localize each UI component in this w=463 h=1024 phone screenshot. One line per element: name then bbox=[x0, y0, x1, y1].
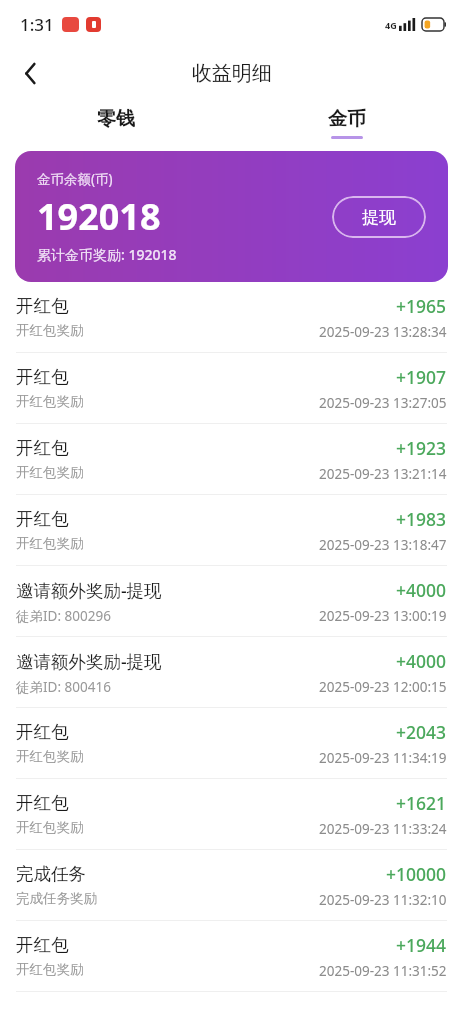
staticText: 2025-09-23 13:00:19 bbox=[319, 607, 447, 625]
staticText: +1983 bbox=[396, 507, 447, 531]
staticText: 192018 bbox=[37, 192, 161, 241]
button[interactable]: 零钱 bbox=[0, 98, 231, 148]
button[interactable]: 开红包 bbox=[0, 353, 463, 424]
staticText: 2025-09-23 13:21:14 bbox=[319, 465, 447, 483]
staticText: 完成任务奖励 bbox=[16, 890, 97, 907]
staticText: 2025-09-23 13:18:47 bbox=[319, 536, 447, 554]
staticText: 开红包 bbox=[16, 508, 69, 530]
staticText: 开红包奖励 bbox=[16, 322, 84, 339]
staticText: 累计金币奖励: 192018 bbox=[37, 245, 177, 264]
staticText: 1:31 bbox=[20, 13, 54, 36]
button[interactable]: 完成任务 bbox=[0, 850, 463, 921]
staticText: +1923 bbox=[396, 436, 447, 460]
staticText: 开红包奖励 bbox=[16, 535, 84, 552]
staticText: 开红包 bbox=[16, 721, 69, 743]
staticText: 开红包奖励 bbox=[16, 393, 84, 410]
button[interactable]: 开红包 bbox=[0, 708, 463, 779]
staticText: +10000 bbox=[386, 862, 447, 886]
staticText: 开红包 bbox=[16, 792, 69, 814]
staticText: 开红包奖励 bbox=[16, 961, 84, 978]
button[interactable]: 金币余额(币) bbox=[15, 151, 448, 282]
staticText: 开红包 bbox=[16, 934, 69, 956]
staticText: 金币余额(币) bbox=[37, 170, 113, 188]
staticText: 开红包 bbox=[16, 437, 69, 459]
button[interactable]: 开红包 bbox=[0, 424, 463, 495]
staticText: 徒弟ID: 800296 bbox=[16, 607, 111, 625]
staticText: 2025-09-23 13:27:05 bbox=[319, 394, 447, 412]
staticText: 开红包 bbox=[16, 295, 69, 317]
staticText: +4000 bbox=[396, 578, 447, 602]
staticText: +2043 bbox=[396, 720, 447, 744]
staticText: 提现 bbox=[362, 207, 396, 228]
staticText: +1944 bbox=[396, 933, 447, 957]
staticText: 2025-09-23 13:28:34 bbox=[319, 323, 447, 341]
button[interactable]: 开红包 bbox=[0, 921, 463, 992]
staticText: +1907 bbox=[396, 365, 447, 389]
staticText: 邀请额外奖励-提现 bbox=[16, 578, 162, 602]
staticText: 4G bbox=[385, 19, 397, 31]
staticText: 完成任务 bbox=[16, 863, 86, 885]
staticText: 2025-09-23 11:34:19 bbox=[319, 749, 447, 767]
staticText: 2025-09-23 11:31:52 bbox=[319, 962, 447, 980]
staticText: 金币 bbox=[328, 107, 366, 131]
staticText: 开红包奖励 bbox=[16, 819, 84, 836]
staticText: 2025-09-23 11:32:10 bbox=[319, 891, 447, 909]
button[interactable]: 开红包 bbox=[0, 495, 463, 566]
staticText: 收益明细 bbox=[192, 61, 272, 86]
button[interactable]: Back bbox=[8, 51, 52, 95]
staticText: 零钱 bbox=[97, 107, 135, 131]
button[interactable]: 提现 bbox=[332, 196, 426, 238]
staticText: 邀请额外奖励-提现 bbox=[16, 649, 162, 673]
staticText: 徒弟ID: 800416 bbox=[16, 678, 111, 696]
staticText: +4000 bbox=[396, 649, 447, 673]
button[interactable]: 开红包 bbox=[0, 779, 463, 850]
button[interactable]: 邀请额外奖励-提现 bbox=[0, 637, 463, 708]
staticText: +1621 bbox=[396, 791, 447, 815]
staticText: 2025-09-23 11:33:24 bbox=[319, 820, 447, 838]
staticText: 开红包 bbox=[16, 366, 69, 388]
staticText: +1965 bbox=[396, 294, 447, 318]
button[interactable]: 金币 bbox=[231, 98, 463, 148]
staticText: 开红包奖励 bbox=[16, 464, 84, 481]
button[interactable]: 开红包 bbox=[0, 282, 463, 353]
staticText: 开红包奖励 bbox=[16, 748, 84, 765]
staticText: 2025-09-23 12:00:15 bbox=[319, 678, 447, 696]
button[interactable]: 邀请额外奖励-提现 bbox=[0, 566, 463, 637]
